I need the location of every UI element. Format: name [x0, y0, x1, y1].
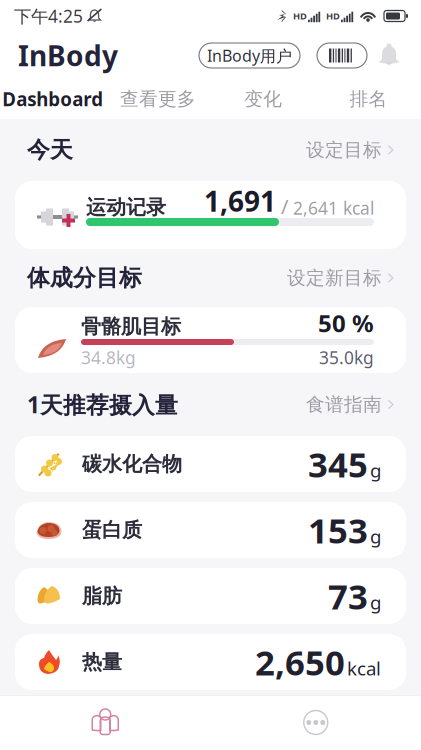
staticText: Dashboard [2, 87, 103, 111]
staticText: HD [326, 10, 340, 22]
button[interactable]: 食谱指南 [306, 393, 394, 416]
button[interactable]: Notifications [375, 41, 403, 69]
button[interactable]: Body [0, 695, 210, 750]
button[interactable]: 查看更多 [105, 79, 210, 119]
staticText: kcal [347, 656, 381, 681]
staticText: 1,691 [204, 182, 276, 220]
staticText: 2,650 [255, 639, 345, 685]
staticText: 变化 [244, 87, 282, 110]
button[interactable]: 排名 [316, 79, 421, 119]
staticText: 35.0kg [319, 346, 374, 369]
staticText: / [276, 193, 293, 220]
staticText: 蛋白质 [82, 518, 142, 542]
staticText: 查看更多 [120, 87, 196, 110]
staticText: 设定目标 [306, 138, 382, 161]
staticText: 食谱指南 [306, 393, 382, 416]
staticText: 今天 [27, 136, 73, 164]
staticText: 排名 [349, 87, 387, 110]
staticText: 体成分目标 [27, 264, 142, 292]
staticText: 153 [308, 507, 368, 553]
staticText: 骨骼肌目标 [81, 314, 181, 339]
button[interactable]: 热量 [0, 634, 421, 700]
button[interactable]: 运动记录 [0, 181, 421, 249]
button[interactable]: 骨骼肌目标 [0, 307, 421, 373]
button[interactable]: More [210, 695, 421, 750]
staticText: 运动记录 [86, 195, 166, 220]
staticText: HD [293, 10, 307, 22]
staticText: g [370, 524, 381, 549]
staticText: 脂肪 [82, 584, 122, 608]
staticText: 34.8kg [81, 346, 136, 369]
staticText: 热量 [82, 650, 122, 674]
staticText: 1天推荐摄入量 [27, 389, 178, 419]
button[interactable]: 碳水化合物 [0, 436, 421, 502]
staticText: 2,641 kcal [293, 197, 374, 220]
button[interactable]: Dashboard [0, 79, 105, 119]
button[interactable]: Scan barcode [317, 43, 367, 68]
button[interactable]: 设定目标 [306, 138, 394, 161]
staticText: 50 % [318, 307, 374, 339]
staticText: 下午4:25 [14, 4, 83, 27]
button[interactable]: 蛋白质 [0, 502, 421, 568]
button[interactable]: 变化 [210, 79, 316, 119]
button[interactable]: 设定新目标 [287, 266, 394, 289]
staticText: 73 [328, 573, 368, 619]
staticText: 碳水化合物 [82, 452, 182, 476]
staticText: 设定新目标 [287, 266, 382, 289]
staticText: g [370, 458, 381, 483]
staticText: InBody [18, 37, 118, 74]
button[interactable]: InBody用户 [199, 43, 300, 68]
staticText: InBody用户 [207, 45, 292, 66]
button[interactable]: 脂肪 [0, 568, 421, 634]
staticText: 345 [308, 441, 368, 487]
staticText: g [370, 590, 381, 615]
